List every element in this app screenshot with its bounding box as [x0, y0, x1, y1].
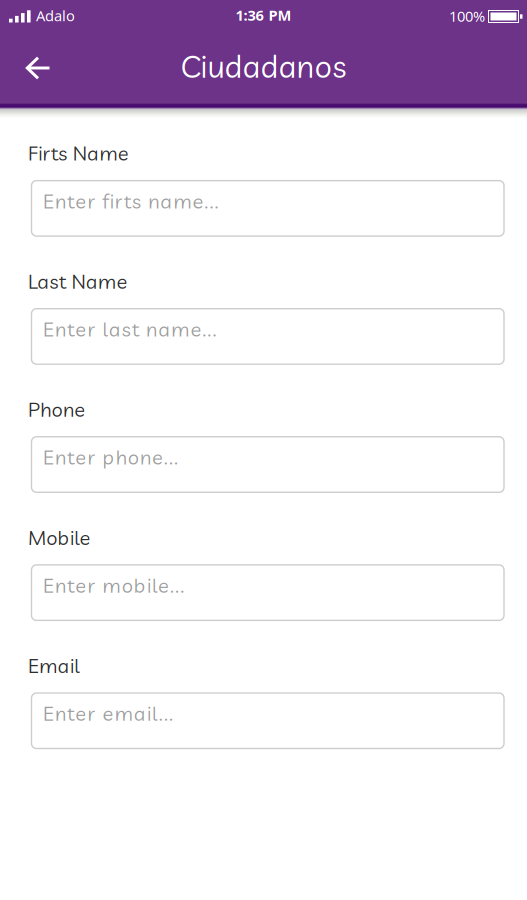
button[interactable]: Enter firts name... [28, 181, 504, 236]
staticText: Enter email... [43, 701, 173, 726]
staticText: PM [268, 5, 291, 25]
staticText: Enter last name... [43, 316, 217, 341]
button[interactable]: Enter email... [28, 693, 504, 748]
staticText: 100% [449, 6, 485, 26]
button[interactable]: Enter phone... [28, 437, 504, 492]
staticText: Last Name [28, 269, 127, 294]
staticText: Enter firts name... [43, 188, 219, 213]
staticText: 1:36 [235, 5, 263, 25]
staticText: Firts Name [28, 140, 129, 166]
staticText: Enter mobile... [43, 573, 184, 598]
staticText: Enter phone... [43, 444, 178, 470]
button[interactable]: Enter mobile... [28, 565, 504, 620]
staticText: Email [28, 653, 79, 678]
staticText: Ciudadanos [180, 47, 346, 85]
button[interactable]: Enter last name... [28, 309, 504, 364]
button[interactable] [0, 56, 50, 79]
staticText: Mobile [28, 525, 90, 550]
staticText: Adalo [36, 6, 75, 25]
staticText: Phone [28, 397, 85, 422]
